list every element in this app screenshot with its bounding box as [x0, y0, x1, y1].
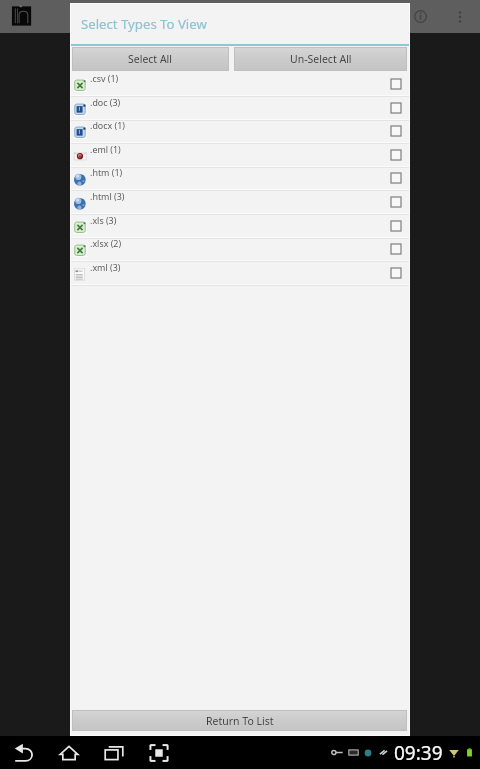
staticText: .htm (1) [90, 166, 123, 178]
staticText: Un-Select All [290, 52, 352, 66]
button[interactable]: Screenshot [144, 738, 174, 768]
button[interactable]: Select All [72, 47, 229, 71]
staticText: .xml (3) [90, 261, 121, 273]
button[interactable]: Recent apps [99, 738, 129, 768]
button[interactable]: .xml (3) [71, 262, 409, 286]
staticText: .docx (1) [90, 119, 125, 131]
button[interactable]: .htm (1) [71, 167, 409, 191]
staticText: Return To List [206, 714, 274, 728]
staticText: 09:39 [394, 740, 443, 766]
staticText: .xls (3) [90, 214, 117, 226]
button[interactable]: .html (3) [71, 191, 409, 215]
button[interactable]: Info [402, 0, 439, 33]
button[interactable]: .xls (3) [71, 215, 409, 239]
staticText: Select All [128, 52, 173, 66]
button[interactable]: .csv (1) [71, 73, 409, 97]
staticText: .eml (1) [90, 143, 121, 155]
button[interactable]: .docx (1) [71, 120, 409, 144]
button[interactable]: Return To List [72, 710, 407, 731]
staticText: .doc (3) [90, 96, 121, 108]
button[interactable]: .xlsx (2) [71, 238, 409, 262]
staticText: .csv (1) [90, 72, 119, 84]
staticText: .html (3) [90, 190, 125, 202]
button[interactable]: .eml (1) [71, 144, 409, 168]
button[interactable]: .doc (3) [71, 97, 409, 121]
staticText: Select Types To View [81, 15, 207, 33]
button[interactable]: Back [9, 738, 39, 768]
staticText: .xlsx (2) [90, 237, 122, 249]
button[interactable]: Home [54, 738, 84, 768]
button[interactable]: Un-Select All [234, 47, 407, 71]
button[interactable]: App home [0, 0, 45, 33]
